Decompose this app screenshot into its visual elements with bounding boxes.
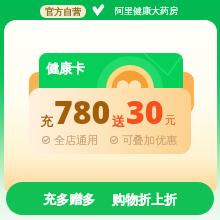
staticText: 充多赠多 <box>43 191 95 207</box>
button[interactable]: 充多赠多 <box>6 182 214 215</box>
staticText: 购物折上折 <box>112 191 177 207</box>
staticText: 元 <box>165 113 176 127</box>
other: Verified pharmacy <box>92 4 104 16</box>
button[interactable]: 官方自营 <box>45 5 81 18</box>
staticText: 可叠加优惠 <box>122 133 177 147</box>
staticText: 阿里健康大药房 <box>115 5 178 16</box>
staticText: 送 <box>112 113 125 129</box>
staticText: 官方自营 <box>45 6 81 17</box>
button[interactable]: 健康卡 <box>39 53 183 96</box>
staticText: 充 <box>40 113 53 129</box>
staticText: 健康卡 <box>46 60 85 76</box>
staticText: 全店通用 <box>54 133 98 147</box>
staticText: 780 <box>54 90 111 134</box>
button[interactable]: 充 <box>29 88 191 154</box>
staticText: 30 <box>126 90 164 134</box>
